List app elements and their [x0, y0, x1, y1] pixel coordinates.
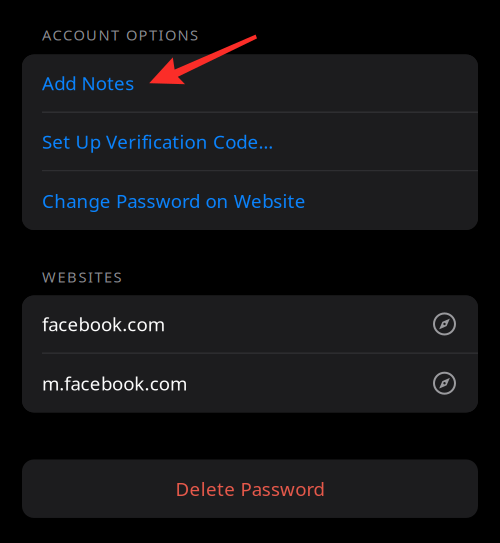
button[interactable]: facebook.com — [22, 295, 478, 354]
staticText: WEBSITES — [42, 267, 121, 286]
staticText: Change Password on Website — [42, 188, 306, 213]
button[interactable]: Add Notes — [22, 54, 478, 113]
staticText: facebook.com — [42, 312, 164, 336]
staticText: Add Notes — [42, 71, 134, 95]
staticText: ACCOUNT OPTIONS — [42, 25, 198, 44]
button[interactable]: m.facebook.com — [22, 354, 478, 412]
button[interactable]: Delete Password — [22, 459, 478, 518]
button[interactable]: Set Up Verification Code… — [22, 113, 478, 171]
staticText: m.facebook.com — [42, 371, 187, 396]
staticText: Delete Password — [175, 476, 324, 501]
button[interactable]: Change Password on Website — [22, 171, 478, 230]
staticText: Set Up Verification Code… — [42, 129, 273, 154]
